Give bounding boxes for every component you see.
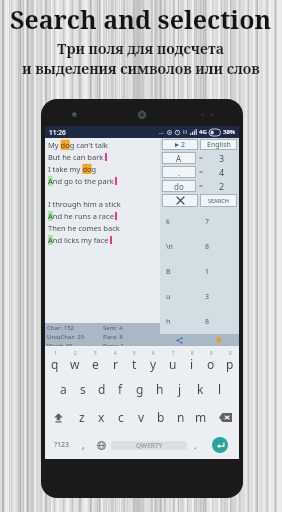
staticText: 5 <box>133 350 136 356</box>
staticText: u <box>166 292 171 302</box>
button[interactable]: m <box>191 403 211 431</box>
staticText: h <box>166 317 171 327</box>
staticText: l <box>218 381 222 397</box>
staticText: 7 <box>205 217 210 227</box>
button[interactable]: 1 <box>45 346 65 375</box>
staticText: и выделения символов или слов <box>22 59 260 78</box>
button[interactable]: g <box>130 375 150 403</box>
staticText: c <box>118 409 124 425</box>
staticText: . <box>178 167 181 178</box>
staticText: z <box>79 409 85 425</box>
staticText: = <box>199 167 204 177</box>
staticText: 1 <box>205 267 210 277</box>
button[interactable]: 9 <box>201 346 220 375</box>
staticText: do <box>174 181 184 192</box>
button[interactable]: SEARCH <box>200 194 237 207</box>
button[interactable]: ?123 <box>48 431 75 459</box>
staticText: 9 <box>210 350 213 356</box>
button[interactable]: . <box>187 431 204 459</box>
button[interactable]: QWERTY <box>111 441 187 450</box>
button[interactable]: h <box>160 309 239 334</box>
button[interactable]: My dog can't talk <box>45 138 160 323</box>
staticText: 4G <box>199 128 207 136</box>
staticText: 3 <box>94 350 97 356</box>
button[interactable]: Favorite <box>199 334 239 346</box>
staticText: = <box>199 153 204 163</box>
button[interactable]: x <box>91 403 111 431</box>
button[interactable]: v <box>131 403 151 431</box>
staticText: o <box>207 356 215 372</box>
staticText: y <box>150 356 157 372</box>
button[interactable]: j <box>170 375 190 403</box>
staticText: a <box>60 381 67 397</box>
staticText: 2 <box>74 350 77 356</box>
button[interactable]: h <box>150 375 170 403</box>
staticText: 2 <box>219 180 225 192</box>
button[interactable]: 8 <box>182 346 201 375</box>
staticText: e <box>92 356 99 372</box>
button[interactable]: 4 <box>105 346 125 375</box>
staticText: UniqChar: 29 <box>47 333 85 341</box>
staticText: Search and selection <box>10 2 272 36</box>
button[interactable]: do <box>162 180 196 192</box>
button[interactable]: \n <box>160 234 239 259</box>
staticText: ?123 <box>54 440 70 450</box>
button[interactable]: Enter <box>212 437 228 453</box>
staticText: My dog can't talk <box>48 140 108 150</box>
button[interactable]: k <box>190 375 210 403</box>
staticText: 1 <box>54 350 57 356</box>
button[interactable]: 6 <box>144 346 163 375</box>
staticText: SEARCH <box>208 197 229 204</box>
button[interactable]: A <box>162 152 196 164</box>
button[interactable]: 3 <box>85 346 105 375</box>
staticText: u <box>169 356 177 372</box>
button[interactable]: d <box>92 375 111 403</box>
button[interactable]: Backspace <box>211 403 239 431</box>
button[interactable]: a <box>54 375 73 403</box>
staticText: d <box>98 381 106 397</box>
button[interactable]: . <box>162 166 196 178</box>
staticText: 4 <box>114 350 117 356</box>
button[interactable]: B <box>160 259 239 284</box>
button[interactable]: 5 <box>125 346 144 375</box>
staticText: q <box>51 356 59 372</box>
staticText: Sent: 4 <box>103 324 123 332</box>
staticText: 7 <box>172 350 175 356</box>
button[interactable] <box>162 194 198 207</box>
button[interactable]: u <box>160 284 239 309</box>
staticText: v <box>138 409 145 425</box>
staticText: t <box>132 356 137 372</box>
button[interactable]: f <box>111 375 130 403</box>
button[interactable]: 2 <box>65 346 85 375</box>
staticText: , <box>82 438 85 452</box>
button[interactable]: 0 <box>220 346 239 375</box>
button[interactable]: z <box>72 403 91 431</box>
button[interactable]: 2 <box>162 139 198 150</box>
staticText: And licks my face <box>48 235 109 245</box>
staticText: 8 <box>205 242 210 252</box>
button[interactable]: k <box>160 210 239 234</box>
button[interactable]: l <box>210 375 230 403</box>
button[interactable]: English <box>200 139 237 150</box>
staticText: A <box>176 153 182 164</box>
button[interactable]: n <box>171 403 191 431</box>
staticText: 11:26 <box>49 128 66 137</box>
button[interactable]: Change language <box>92 431 111 459</box>
staticText: English <box>207 140 231 150</box>
staticText: Page: 1 <box>103 342 124 346</box>
staticText: Три поля для подсчета <box>57 39 225 58</box>
staticText: Para: 8 <box>103 333 123 341</box>
button[interactable]: , <box>75 431 92 459</box>
button[interactable]: 7 <box>163 346 182 375</box>
button[interactable]: s <box>73 375 92 403</box>
staticText: B <box>166 267 171 277</box>
button[interactable]: c <box>111 403 131 431</box>
button[interactable]: Shift <box>45 403 72 431</box>
button[interactable]: Share <box>160 334 199 346</box>
staticText: 8 <box>205 317 210 327</box>
staticText: r <box>113 356 118 372</box>
button[interactable]: b <box>151 403 171 431</box>
staticText: k <box>166 217 170 227</box>
staticText: x <box>98 409 105 425</box>
staticText: p <box>226 356 234 372</box>
